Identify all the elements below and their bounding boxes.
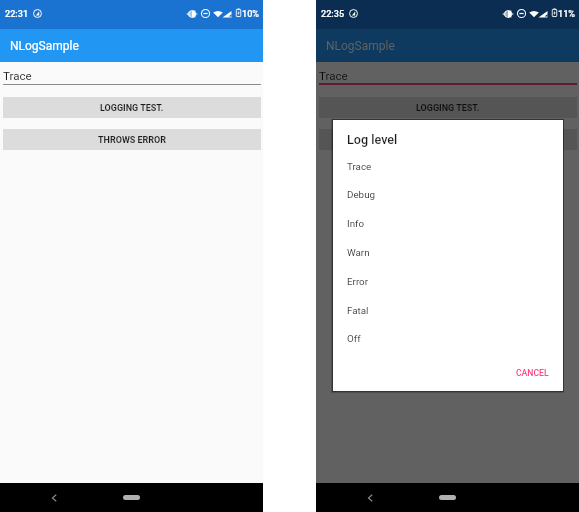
staticText: LOGGING TEST. [416,103,480,114]
staticText: LOGGING TEST. [100,103,164,114]
button[interactable]: Trace [319,68,579,84]
button[interactable]: THROWS ERROR [319,129,577,150]
staticText: 22:31 [5,9,29,20]
button[interactable]: Error [333,267,563,296]
staticText: Trace [319,69,348,83]
staticText: CANCEL [516,368,549,378]
staticText: NLogSample [326,39,395,53]
staticText: Error [347,276,369,287]
staticText: Log level [347,132,398,147]
staticText: 10% [242,9,260,20]
button[interactable]: Debug [333,180,563,209]
staticText: Fatal [347,305,369,316]
staticText: NLogSample [10,39,79,53]
button[interactable]: LOGGING TEST. [3,97,261,118]
button[interactable]: LOGGING TEST. [319,97,577,118]
button[interactable]: Warn [333,238,563,267]
button[interactable]: Fatal [333,296,563,325]
staticText: Warn [347,247,370,258]
staticText: Trace [3,69,32,83]
button[interactable]: Off [333,324,563,353]
staticText: Info [347,218,365,229]
button[interactable]: Back [362,490,378,506]
staticText: 11% [558,9,576,20]
staticText: THROWS ERROR [98,135,167,146]
button[interactable]: CANCEL [508,362,557,384]
button[interactable]: Home [439,495,456,500]
staticText: Off [347,333,361,344]
button[interactable]: THROWS ERROR [3,129,261,150]
button[interactable]: Home [123,495,140,500]
button[interactable]: Info [333,209,563,238]
staticText: Debug [347,189,376,200]
staticText: Trace [347,161,372,172]
button[interactable]: Trace [3,68,266,84]
button[interactable]: Back [46,490,62,506]
button[interactable]: Trace [333,152,563,181]
staticText: 22:35 [321,9,345,20]
